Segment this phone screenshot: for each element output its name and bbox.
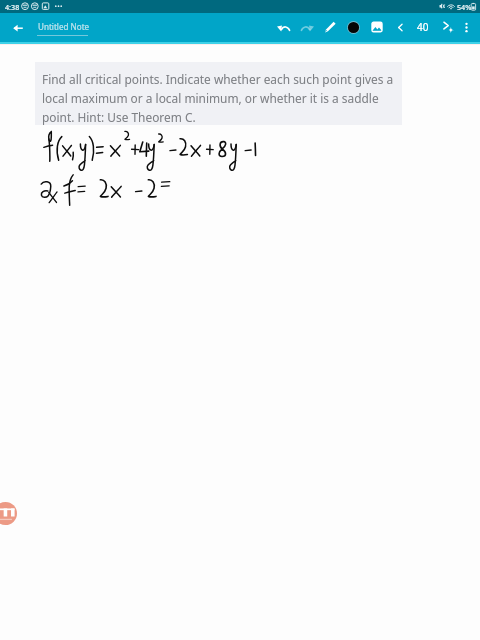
button[interactable]: Add page (437, 16, 459, 38)
button[interactable]: Previous page (389, 16, 411, 38)
staticText: 40 (417, 20, 429, 34)
button[interactable]: More options (455, 16, 477, 38)
button[interactable]: 40 (412, 16, 434, 38)
button[interactable]: Ink colour (342, 16, 364, 38)
staticText: 4:38 (5, 2, 20, 12)
button[interactable]: Untitled Note (33, 14, 93, 40)
button[interactable]: Back (5, 15, 30, 40)
button[interactable]: Insert image (366, 16, 388, 38)
button[interactable]: Pen (319, 16, 341, 38)
button[interactable]: Redo (296, 16, 318, 38)
staticText: 54% (457, 2, 472, 12)
button[interactable]: Undo (272, 16, 294, 38)
staticText: Find all critical points. Indicate wheth… (42, 71, 394, 125)
staticText: Untitled Note (38, 21, 90, 32)
